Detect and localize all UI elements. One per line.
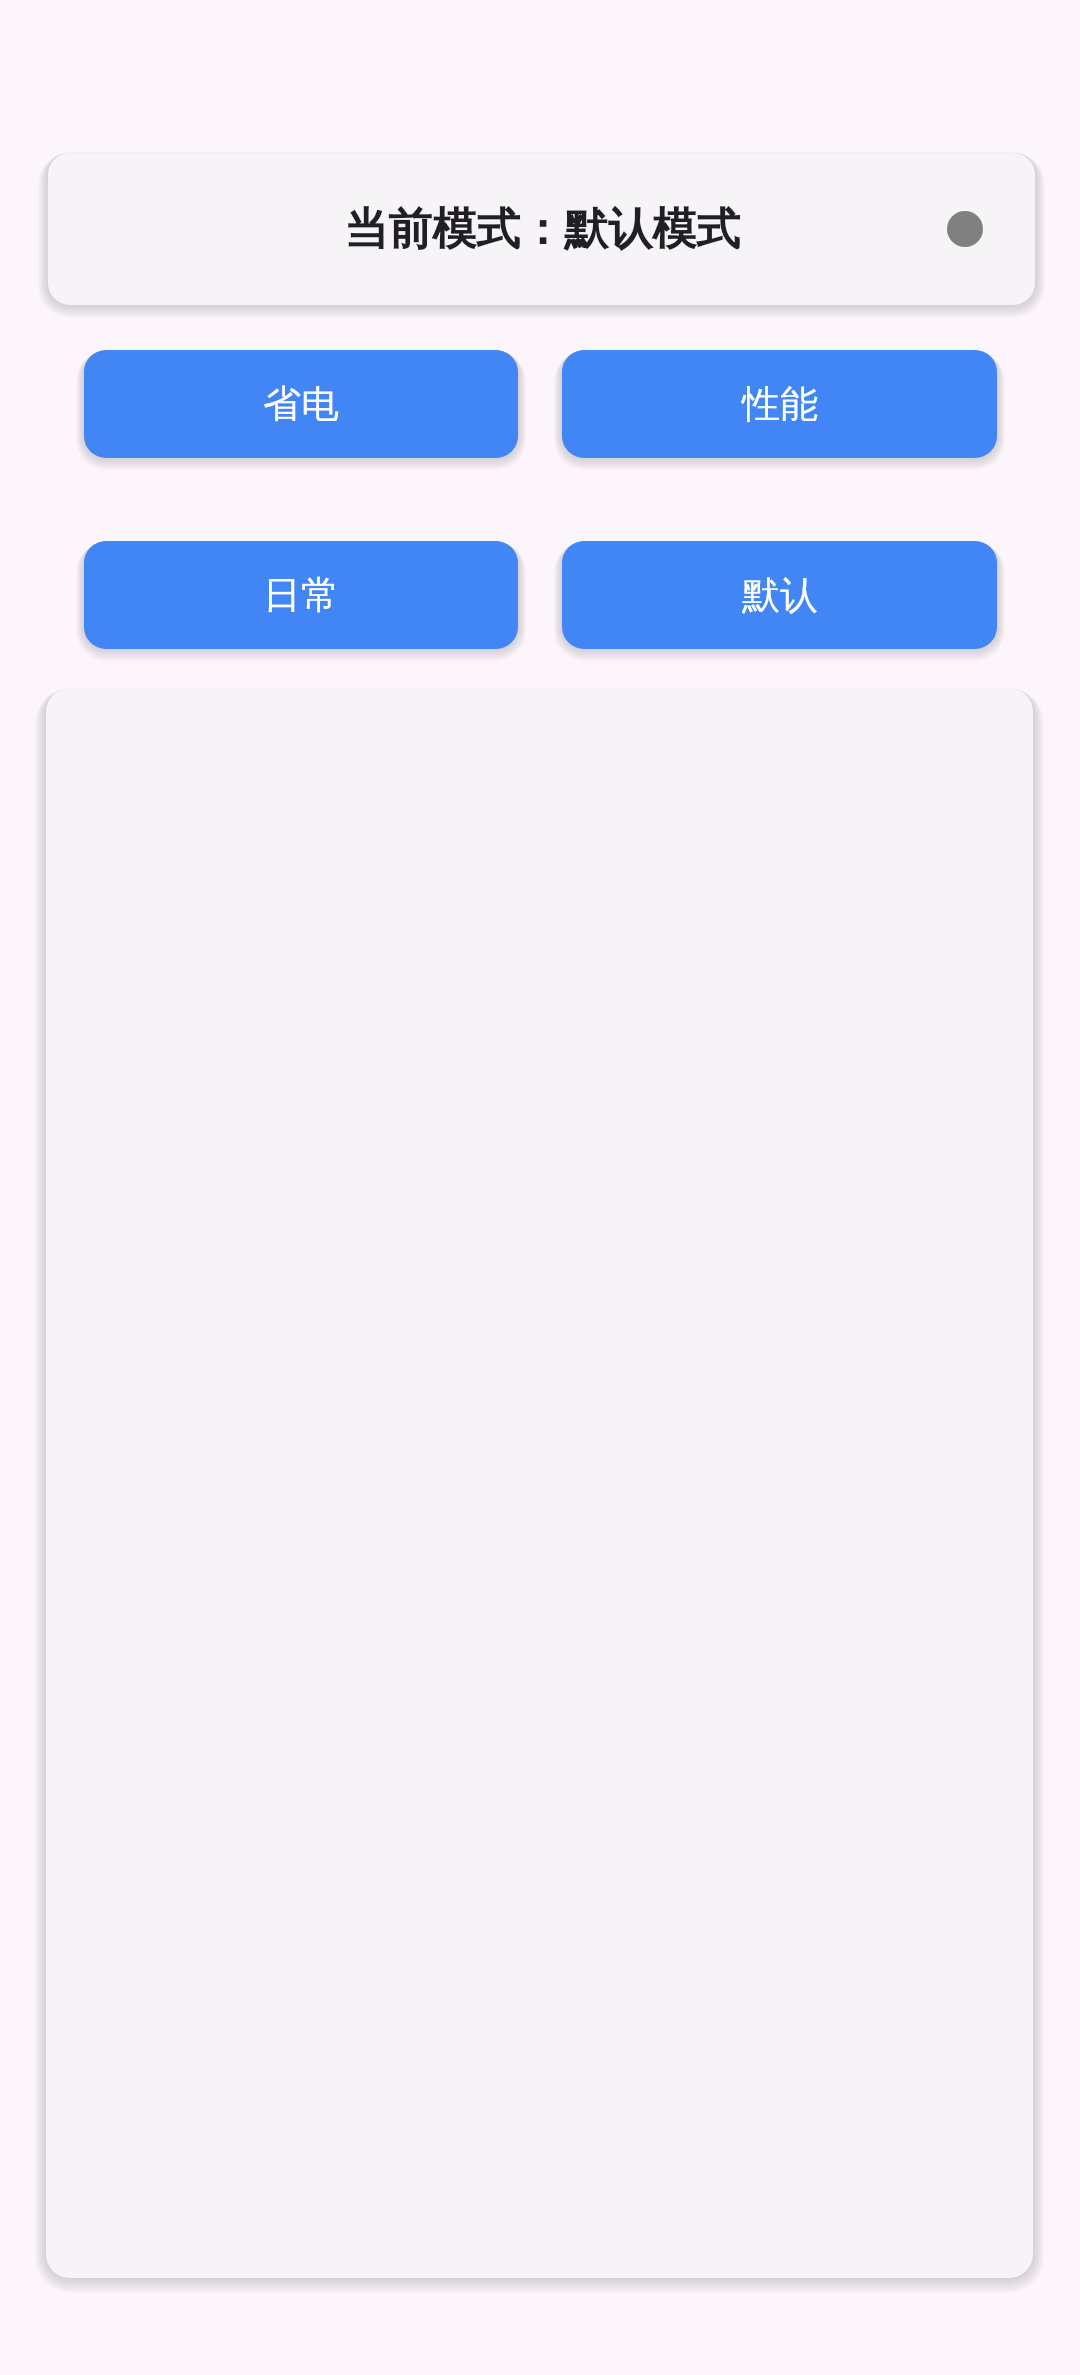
staticText: 日常 (263, 571, 339, 619)
button[interactable]: 性能 (562, 350, 997, 458)
button[interactable]: 默认 (562, 541, 997, 649)
button[interactable]: 当前模式：默认模式 (48, 153, 1035, 305)
staticText: 省电 (263, 380, 339, 428)
button[interactable]: 省电 (84, 350, 518, 458)
staticText: 性能 (742, 380, 818, 428)
button[interactable]: 日常 (84, 541, 518, 649)
staticText: 默认 (742, 571, 818, 619)
other: Status indicator (947, 211, 983, 247)
staticText: 当前模式：默认模式 (344, 202, 740, 257)
